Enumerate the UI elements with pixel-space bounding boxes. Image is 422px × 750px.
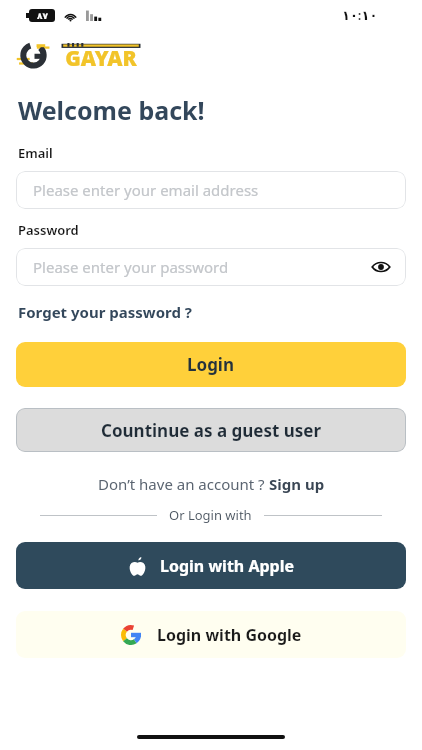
staticText: Password: [18, 221, 79, 239]
staticText: Login with Google: [157, 624, 302, 646]
staticText: GAYAR: [65, 44, 137, 73]
staticText: Please enter your password: [33, 257, 229, 277]
button[interactable]: Sign up: [269, 474, 325, 494]
staticText: Welcome back!: [18, 93, 205, 127]
staticText: Please enter your email address: [33, 180, 259, 200]
button[interactable]: Countinue as a guest user: [16, 408, 406, 452]
staticText: Login with Apple: [160, 555, 295, 577]
staticText: Forget your password ?: [18, 302, 192, 322]
staticText: Countinue as a guest user: [101, 419, 322, 442]
button[interactable]: Login with Apple: [16, 542, 406, 589]
staticText: Or Login with: [169, 506, 252, 524]
button[interactable]: Login: [16, 342, 406, 387]
button[interactable]: Login with Google: [16, 611, 406, 658]
button[interactable]: Show password: [370, 256, 392, 278]
staticText: Don’t have an account ?: [98, 474, 269, 494]
staticText: Login: [187, 353, 235, 376]
staticText: ٨٧: [37, 11, 48, 21]
button[interactable]: Forget your password ?: [18, 302, 192, 322]
staticText: Email: [18, 144, 53, 162]
other: Signal strength: [86, 10, 101, 21]
other: Wi-Fi: [64, 9, 77, 22]
other: Gayar logo: [16, 41, 54, 71]
staticText: Sign up: [269, 474, 325, 494]
button[interactable]: Please enter your password: [16, 248, 406, 286]
button[interactable]: Please enter your email address: [16, 171, 406, 209]
staticText: ١٠:١٠: [342, 6, 378, 24]
